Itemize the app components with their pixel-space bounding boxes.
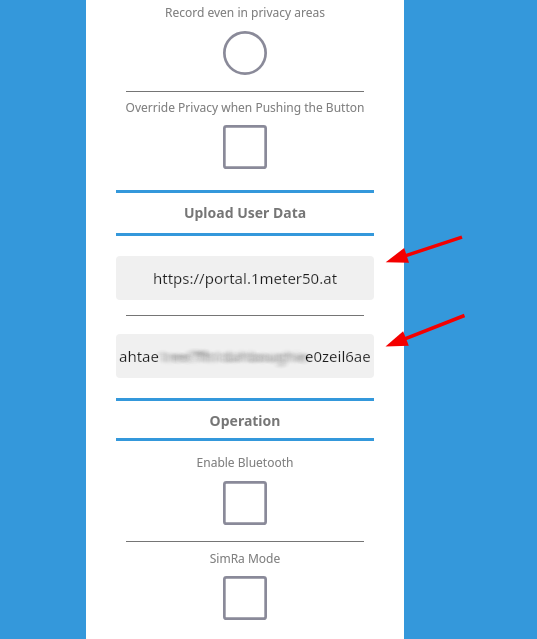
staticText: 1ree7fh1dahboughie xyxy=(165,348,314,368)
staticText: 1ree7fh1dahboughie xyxy=(153,346,302,366)
staticText: 1ree7fh1dahboughie xyxy=(167,343,316,363)
staticText: 1ree7fh1dahboughie xyxy=(166,344,315,364)
staticText: 1ree7fh1dahboughie xyxy=(162,348,311,368)
staticText: 1ree7fh1dahboughie xyxy=(156,350,305,370)
staticText: 1ree7fh1dahboughie xyxy=(153,342,302,362)
staticText: 1ree7fh1dahboughie xyxy=(155,343,304,363)
staticText: Override Privacy when Pushing the Button xyxy=(86,99,404,115)
staticText: 1ree7fh1dahboughie xyxy=(165,349,314,369)
staticText: 1ree7fh1dahboughie xyxy=(157,349,306,369)
staticText: 1ree7fh1dahboughie xyxy=(167,342,316,362)
staticText: 1ree7fh1dahboughie xyxy=(155,344,304,364)
staticText: 1ree7fh1dahboughie xyxy=(160,342,309,362)
staticText: 1ree7fh1dahboughie xyxy=(159,343,308,363)
staticText: Enable Bluetooth xyxy=(86,454,404,470)
staticText: 1ree7fh1dahboughie xyxy=(156,349,305,369)
staticText: 1ree7fh1dahboughie xyxy=(153,348,302,368)
staticText: 1ree7fh1dahboughie xyxy=(154,347,303,367)
staticText: 1ree7fh1dahboughie xyxy=(150,349,299,369)
staticText: 1ree7fh1dahboughie xyxy=(151,343,300,363)
staticText: 1ree7fh1dahboughie xyxy=(165,346,314,366)
staticText: 1ree7fh1dahboughie xyxy=(159,349,308,369)
staticText: 1ree7fh1dahboughie xyxy=(165,347,314,367)
staticText: 1ree7fh1dahboughie xyxy=(167,344,316,364)
staticText: 1ree7fh1dahboughie xyxy=(157,346,306,366)
staticText: 1ree7fh1dahboughie xyxy=(156,346,305,366)
staticText: 1ree7fh1dahboughie xyxy=(158,342,307,362)
staticText: 1ree7fh1dahboughie xyxy=(154,346,303,366)
staticText: 1ree7fh1dahboughie xyxy=(150,350,299,370)
staticText: 1ree7fh1dahboughie xyxy=(150,347,299,367)
staticText: 1ree7fh1dahboughie xyxy=(161,343,310,363)
staticText: 1ree7fh1dahboughie xyxy=(165,346,314,366)
staticText: 1ree7fh1dahboughie xyxy=(166,347,315,367)
staticText: 1ree7fh1dahboughie xyxy=(156,342,305,362)
staticText: 1ree7fh1dahboughie xyxy=(155,346,304,366)
staticText: 1ree7fh1dahboughie xyxy=(161,348,310,368)
staticText: 1ree7fh1dahboughie xyxy=(166,349,315,369)
staticText: 1ree7fh1dahboughie xyxy=(153,345,302,365)
staticText: 1ree7fh1dahboughie xyxy=(167,350,316,370)
button[interactable]: Override privacy when pushing the button… xyxy=(223,125,267,169)
staticText: 1ree7fh1dahboughie xyxy=(159,350,308,370)
staticText: 1ree7fh1dahboughie xyxy=(162,343,311,363)
staticText: 1ree7fh1dahboughie xyxy=(165,345,314,365)
staticText: 1ree7fh1dahboughie xyxy=(152,345,301,365)
button[interactable]: Enable bluetooth, off xyxy=(223,481,267,525)
staticText: 1ree7fh1dahboughie xyxy=(151,349,300,369)
staticText: 1ree7fh1dahboughie xyxy=(166,343,315,363)
button[interactable]: https://portal.1meter50.at xyxy=(116,256,374,300)
staticText: 1ree7fh1dahboughie xyxy=(150,345,299,365)
button[interactable]: Record even in privacy areas, off xyxy=(223,31,267,75)
staticText: 1ree7fh1dahboughie xyxy=(163,345,312,365)
staticText: 1ree7fh1dahboughie xyxy=(164,344,313,364)
staticText: 1ree7fh1dahboughie xyxy=(164,345,313,365)
staticText: 1ree7fh1dahboughie xyxy=(165,348,314,368)
staticText: 1ree7fh1dahboughie xyxy=(166,342,315,362)
staticText: 1ree7fh1dahboughie xyxy=(167,347,316,367)
staticText: 1ree7fh1dahboughie xyxy=(155,348,304,368)
staticText: 1ree7fh1dahboughie xyxy=(158,349,307,369)
staticText: 1ree7fh1dahboughie xyxy=(165,350,314,370)
staticText: 1ree7fh1dahboughie xyxy=(158,346,307,366)
staticText: 1ree7fh1dahboughie xyxy=(153,350,302,370)
staticText: 1ree7fh1dahboughie xyxy=(166,350,315,370)
staticText: 1ree7fh1dahboughie xyxy=(161,346,310,366)
button[interactable]: ahtae xyxy=(116,334,374,378)
staticText: 1ree7fh1dahboughie xyxy=(150,346,299,366)
staticText: 1ree7fh1dahboughie xyxy=(160,347,309,367)
staticText: 1ree7fh1dahboughie xyxy=(164,350,313,370)
staticText: 1ree7fh1dahboughie xyxy=(161,347,310,367)
button[interactable]: SimRa mode, off xyxy=(223,576,267,620)
staticText: 1ree7fh1dahboughie xyxy=(152,346,301,366)
staticText: 1ree7fh1dahboughie xyxy=(150,343,299,363)
staticText: 1ree7fh1dahboughie xyxy=(165,344,314,364)
staticText: 1ree7fh1dahboughie xyxy=(156,343,305,363)
staticText: 1ree7fh1dahboughie xyxy=(158,347,307,367)
staticText: 1ree7fh1dahboughie xyxy=(164,346,313,366)
staticText: 1ree7fh1dahboughie xyxy=(165,343,314,363)
staticText: 1ree7fh1dahboughie xyxy=(162,342,311,362)
staticText: 1ree7fh1dahboughie xyxy=(163,342,312,362)
staticText: 1ree7fh1dahboughie xyxy=(156,347,305,367)
staticText: 1ree7fh1dahboughie xyxy=(152,344,301,364)
staticText: 1ree7fh1dahboughie xyxy=(163,346,312,366)
staticText: 1ree7fh1dahboughie xyxy=(154,343,303,363)
staticText: 1ree7fh1dahboughie xyxy=(161,344,310,364)
staticText: 1ree7fh1dahboughie xyxy=(153,344,302,364)
staticText: 1ree7fh1dahboughie xyxy=(154,345,303,365)
staticText: 1ree7fh1dahboughie xyxy=(152,350,301,370)
staticText: 1ree7fh1dahboughie xyxy=(166,346,315,366)
staticText: 1ree7fh1dahboughie xyxy=(154,349,303,369)
staticText: 1ree7fh1dahboughie xyxy=(165,347,314,367)
staticText: 1ree7fh1dahboughie xyxy=(167,349,316,369)
staticText: 1ree7fh1dahboughie xyxy=(159,348,308,368)
staticText: 1ree7fh1dahboughie xyxy=(165,342,314,362)
staticText: 1ree7fh1dahboughie xyxy=(159,342,308,362)
staticText: 1ree7fh1dahboughie xyxy=(155,345,304,365)
staticText: 1ree7fh1dahboughie xyxy=(154,350,303,370)
staticText: 1ree7fh1dahboughie xyxy=(160,344,309,364)
staticText: 1ree7fh1dahboughie xyxy=(159,344,308,364)
staticText: 1ree7fh1dahboughie xyxy=(164,349,313,369)
staticText: 1ree7fh1dahboughie xyxy=(161,349,310,369)
